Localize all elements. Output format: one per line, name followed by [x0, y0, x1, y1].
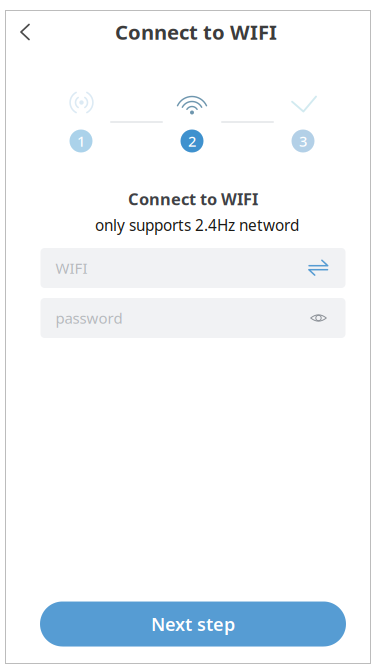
button[interactable]: Show password: [305, 305, 331, 331]
staticText: Connect to WIFI: [115, 18, 277, 46]
staticText: password: [55, 308, 122, 328]
button[interactable]: Next step: [40, 601, 346, 646]
staticText: 3: [299, 131, 307, 151]
staticText: 1: [77, 131, 85, 151]
button[interactable]: Back: [3, 10, 47, 54]
staticText: WIFI: [55, 258, 87, 278]
staticText: Next step: [151, 612, 235, 636]
staticText: only supports 2.4Hz netword: [95, 215, 299, 235]
staticText: 2: [188, 131, 196, 151]
staticText: Connect to WIFI: [128, 188, 258, 210]
button[interactable]: Switch network: [305, 255, 331, 281]
